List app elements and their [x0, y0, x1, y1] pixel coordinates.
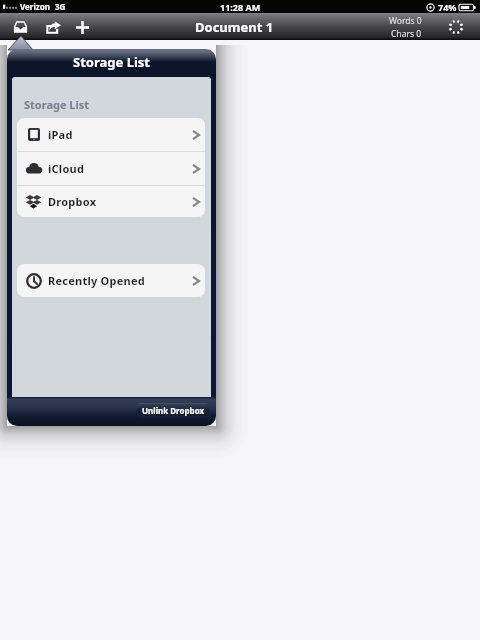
staticText: Storage List: [73, 53, 150, 71]
button[interactable]: iCloud: [17, 152, 205, 185]
staticText: iPad: [48, 127, 73, 142]
staticText: Recently Opened: [48, 273, 146, 288]
staticText: Document 1: [195, 18, 274, 36]
button[interactable]: Share: [40, 14, 66, 40]
staticText: Verizon: [20, 1, 50, 12]
button[interactable]: Add: [69, 14, 95, 40]
staticText: 11:28 AM: [220, 1, 261, 13]
staticText: 74%: [438, 1, 457, 13]
button[interactable]: Recently Opened: [17, 264, 205, 297]
button[interactable]: iPad: [17, 118, 205, 151]
button[interactable]: Sync: [443, 14, 469, 40]
staticText: Unlink Dropbox: [142, 405, 205, 416]
button[interactable]: Unlink Dropbox: [137, 403, 209, 418]
button[interactable]: Dropbox: [17, 186, 205, 217]
staticText: iCloud: [48, 161, 85, 176]
button[interactable]: Documents: [7, 14, 33, 40]
staticText: Dropbox: [48, 194, 97, 209]
staticText: Chars 0: [391, 28, 422, 40]
staticText: Storage List: [24, 97, 90, 112]
staticText: 3G: [55, 1, 66, 12]
staticText: Words 0: [389, 15, 422, 27]
